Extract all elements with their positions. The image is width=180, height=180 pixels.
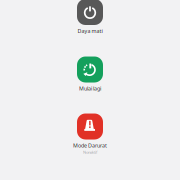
staticText: Mulai lagi <box>79 85 101 92</box>
staticText: Nonaktif <box>83 150 97 155</box>
staticText: Daya mati <box>77 27 102 35</box>
staticText: Mode Darurat <box>73 142 107 149</box>
button[interactable]: Daya mati <box>0 0 180 35</box>
button[interactable]: Mode Darurat <box>0 113 180 155</box>
button[interactable]: Mulai lagi <box>0 56 180 92</box>
